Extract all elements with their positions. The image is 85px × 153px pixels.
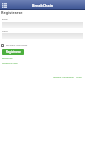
button[interactable] — [2, 22, 83, 28]
button[interactable]: Registrate — [2, 57, 13, 60]
button[interactable]: Menu — [1, 2, 8, 9]
button[interactable]: Ayuda — [76, 76, 82, 79]
staticText: BreakChain — [32, 3, 54, 8]
staticText: Email — [2, 18, 8, 21]
button[interactable]: Olvidaste tu clave? — [2, 62, 18, 64]
button[interactable]: Recordar contrasena — [1, 44, 28, 47]
button[interactable]: Terminos y condiciones — [53, 76, 74, 79]
button[interactable] — [2, 33, 83, 39]
button[interactable]: Registrarse — [2, 49, 24, 55]
staticText: Registrarse — [1, 10, 23, 15]
staticText: Clave — [2, 30, 8, 33]
staticText: Registrarse — [6, 50, 21, 54]
staticText: Recordar contrasena — [6, 44, 28, 47]
